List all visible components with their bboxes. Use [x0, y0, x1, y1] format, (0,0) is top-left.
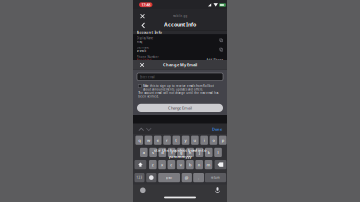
- button[interactable]: j: [196, 148, 203, 157]
- staticText: r: [166, 137, 168, 143]
- staticText: The account email will not change until …: [138, 91, 218, 98]
- button[interactable]: b: [186, 160, 194, 169]
- staticText: p: [222, 137, 224, 143]
- button[interactable]: Close: [139, 62, 145, 68]
- button[interactable]: m: [205, 160, 212, 169]
- staticText: w: [147, 137, 150, 143]
- staticText: mobile.gg: [172, 14, 187, 18]
- staticText: Add Phone: [206, 58, 223, 62]
- button[interactable]: @: [182, 173, 192, 182]
- staticText: e: [157, 137, 159, 143]
- button[interactable]: Back: [140, 22, 146, 28]
- button[interactable]: f: [168, 148, 175, 157]
- staticText: u: [193, 137, 196, 143]
- button[interactable]: Done: [207, 127, 222, 132]
- staticText: Account Info: [137, 29, 162, 35]
- button[interactable]: e: [154, 136, 162, 145]
- button[interactable]: Username: [133, 45, 227, 54]
- button[interactable]: a: [140, 148, 148, 157]
- button[interactable]: i: [200, 136, 208, 145]
- button[interactable]: u: [191, 136, 199, 145]
- staticText: h: [189, 150, 192, 155]
- staticText: @: [185, 175, 189, 180]
- button[interactable]: Dictation: [215, 187, 220, 193]
- staticText: .: [198, 175, 199, 180]
- staticText: f: [171, 150, 172, 155]
- staticText: Not linked: [137, 58, 152, 62]
- staticText: yummmyyy: [168, 154, 191, 159]
- staticText: 123: [136, 176, 142, 179]
- button[interactable]: l: [214, 148, 222, 157]
- staticText: o: [212, 137, 214, 143]
- button[interactable]: x: [158, 160, 166, 169]
- staticText: Make this to sign up to receive emails f…: [143, 84, 214, 91]
- button[interactable]: n: [195, 160, 203, 169]
- staticText: k: [208, 150, 210, 155]
- staticText: t: [175, 137, 177, 143]
- staticText: v: [180, 162, 182, 167]
- button[interactable]: Delete: [215, 160, 226, 169]
- staticText: nixq: [137, 40, 143, 43]
- button[interactable]: y: [182, 136, 189, 145]
- button[interactable]: Phone Number: [133, 54, 227, 63]
- button[interactable]: Next field: [145, 127, 152, 132]
- staticText: g: [180, 150, 182, 155]
- button[interactable]: q: [135, 136, 143, 145]
- button[interactable]: return: [205, 173, 226, 182]
- staticText: Change Email: [168, 105, 192, 110]
- button[interactable]: v: [177, 160, 184, 169]
- button[interactable]: .: [193, 173, 204, 182]
- staticText: y: [185, 137, 187, 143]
- button[interactable]: t: [172, 136, 180, 145]
- staticText: Enter email: [140, 75, 155, 79]
- button[interactable]: Emoji keyboard: [140, 187, 146, 193]
- staticText: q: [138, 137, 140, 143]
- staticText: stir the hopeless bowl into: [154, 148, 206, 153]
- staticText: m: [206, 162, 210, 167]
- button[interactable]: d: [159, 148, 166, 157]
- button[interactable]: space: [158, 173, 180, 182]
- staticText: Account Info: [164, 21, 196, 28]
- staticText: a: [143, 150, 145, 155]
- button[interactable]: s: [149, 148, 157, 157]
- button[interactable]: h: [186, 148, 194, 157]
- staticText: 17:48: [141, 2, 150, 7]
- staticText: return: [211, 176, 220, 179]
- staticText: n: [198, 162, 201, 167]
- button[interactable]: c: [168, 160, 175, 169]
- button[interactable]: Change Email: [137, 104, 223, 112]
- staticText: i: [204, 137, 205, 143]
- button[interactable]: w: [145, 136, 152, 145]
- staticText: s: [152, 150, 154, 155]
- button[interactable]: 123: [134, 173, 144, 182]
- staticText: Phone Number: [137, 55, 159, 59]
- staticText: z: [152, 162, 154, 167]
- button[interactable]: z: [149, 160, 157, 169]
- button[interactable]: Shift: [134, 160, 146, 169]
- staticText: Display Name: [137, 36, 154, 40]
- button[interactable]: p: [219, 136, 226, 145]
- staticText: c: [170, 162, 172, 167]
- button[interactable]: Emoji: [146, 173, 156, 182]
- staticText: Change My Email: [163, 62, 197, 67]
- button[interactable]: o: [210, 136, 217, 145]
- staticText: Username: [137, 46, 150, 49]
- staticText: Done: [212, 127, 222, 132]
- staticText: d: [161, 150, 163, 155]
- button[interactable]: g: [177, 148, 185, 157]
- button[interactable]: Close: [139, 13, 145, 19]
- button[interactable]: k: [205, 148, 213, 157]
- button[interactable]: Display Name: [133, 36, 227, 45]
- staticText: x: [161, 162, 163, 167]
- staticText: b: [189, 162, 191, 167]
- staticText: sesmob: [137, 49, 147, 53]
- button[interactable]: r: [163, 136, 171, 145]
- button[interactable]: Previous field: [138, 127, 144, 132]
- staticText: space: [166, 176, 173, 179]
- staticText: j: [199, 150, 200, 155]
